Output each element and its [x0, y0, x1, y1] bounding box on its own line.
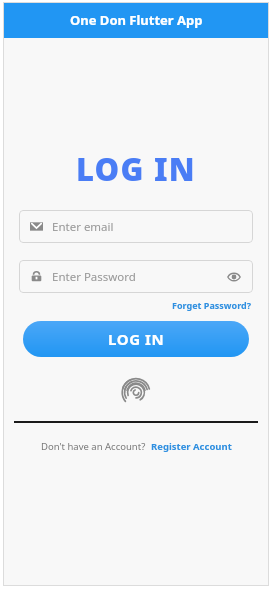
button[interactable]: Enter Password	[19, 260, 253, 293]
button[interactable]: Forget Password?	[170, 297, 253, 313]
button[interactable]: Register Account	[151, 440, 232, 453]
staticText: LOG IN	[108, 329, 165, 349]
staticText: Enter email	[52, 219, 114, 235]
button[interactable]: Login with fingerprint	[118, 373, 154, 409]
staticText: Don't have an Account?	[41, 440, 146, 453]
button[interactable]: Show password	[225, 268, 243, 286]
button[interactable]: One Don Flutter App	[3, 2, 269, 38]
staticText: Forget Password?	[172, 299, 251, 311]
staticText: Register Account	[151, 440, 232, 453]
staticText: One Don Flutter App	[70, 11, 203, 29]
button[interactable]: Enter email	[19, 210, 253, 243]
button[interactable]: LOG IN	[23, 321, 249, 357]
staticText: Enter Password	[52, 269, 225, 285]
staticText: LOG IN	[76, 148, 196, 190]
